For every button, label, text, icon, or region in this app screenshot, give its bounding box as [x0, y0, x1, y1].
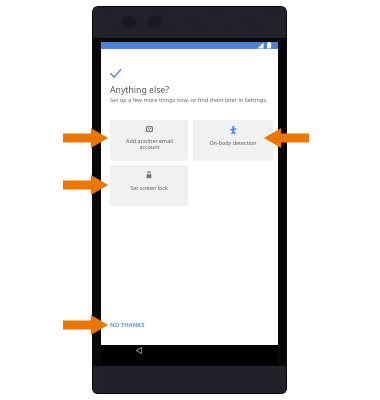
button[interactable]: On-body detection [193, 120, 273, 161]
button[interactable]: Add another email account [110, 120, 188, 161]
button[interactable]: Set screen lock [110, 165, 188, 206]
staticText: On-body detection [209, 139, 257, 146]
staticText: Set screen lock [130, 184, 168, 191]
button[interactable]: Back [133, 344, 145, 356]
staticText: NO THANKS [110, 321, 145, 329]
button[interactable]: NO THANKS [110, 319, 145, 331]
staticText: Set up a few more things now, or find th… [110, 96, 275, 104]
staticText: Anything else? [110, 84, 170, 96]
staticText: Add another email account [126, 137, 173, 151]
